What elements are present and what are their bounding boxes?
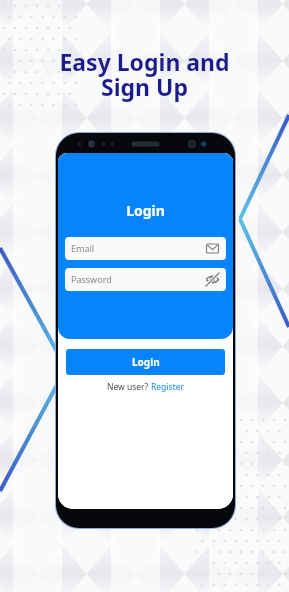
staticText: Easy Login and Sign Up xyxy=(0,46,289,103)
button[interactable]: Password xyxy=(65,268,226,291)
staticText: Login xyxy=(132,355,160,369)
other: Email xyxy=(206,242,219,255)
button[interactable]: Login xyxy=(66,349,225,375)
staticText: New user? xyxy=(107,381,151,393)
staticText: Password xyxy=(71,273,112,285)
staticText: Email xyxy=(71,242,95,254)
other: Show password xyxy=(206,273,219,286)
button[interactable]: Register xyxy=(151,381,184,393)
button[interactable]: Email xyxy=(65,237,226,260)
staticText: Login xyxy=(58,201,233,220)
